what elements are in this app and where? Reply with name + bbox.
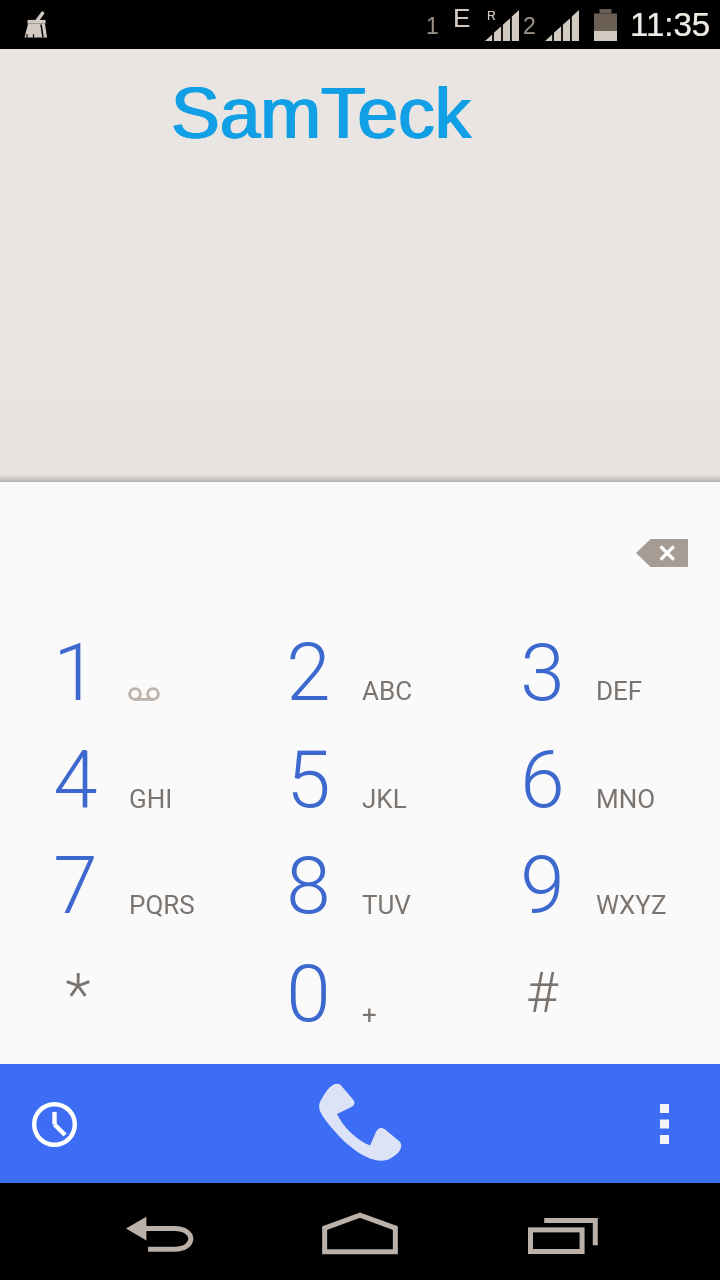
- staticText: 8: [286, 839, 331, 933]
- staticText: PQRS: [129, 890, 195, 920]
- staticText: 9: [520, 839, 565, 933]
- staticText: *: [65, 960, 91, 1029]
- staticText: 11:35: [630, 6, 711, 43]
- staticText: 0: [286, 947, 331, 1041]
- staticText: 3: [520, 626, 565, 720]
- button[interactable]: *: [0, 911, 240, 1018]
- button[interactable]: 5: [240, 697, 480, 804]
- button[interactable]: 7: [0, 804, 240, 911]
- staticText: +: [362, 1000, 377, 1030]
- button[interactable]: Backspace: [616, 524, 708, 582]
- button[interactable]: Call history: [14, 1084, 94, 1164]
- button[interactable]: 3: [480, 590, 720, 697]
- button[interactable]: Call: [275, 1064, 445, 1183]
- staticText: WXYZ: [596, 890, 667, 920]
- button[interactable]: Home: [300, 1183, 420, 1280]
- staticText: DEF: [596, 676, 643, 706]
- button[interactable]: 2: [240, 590, 480, 697]
- staticText: SamTeck: [172, 72, 473, 154]
- staticText: 2: [286, 626, 331, 720]
- button[interactable]: 8: [240, 804, 480, 911]
- button[interactable]: More options: [624, 1084, 704, 1164]
- button[interactable]: 1: [0, 590, 240, 697]
- staticText: MNO: [596, 784, 656, 814]
- staticText: #: [526, 961, 558, 1025]
- button[interactable]: 9: [480, 804, 720, 911]
- staticText: GHI: [129, 784, 173, 814]
- staticText: 2: [523, 13, 536, 39]
- staticText: TUV: [362, 890, 411, 920]
- button[interactable]: 6: [480, 697, 720, 804]
- button[interactable]: Back: [100, 1183, 220, 1280]
- button[interactable]: #: [480, 911, 720, 1018]
- staticText: 1: [53, 626, 98, 720]
- button[interactable]: 0: [240, 911, 480, 1018]
- staticText: 6: [520, 733, 565, 827]
- staticText: 5: [286, 733, 331, 827]
- staticText: SamTeck: [170, 72, 471, 154]
- staticText: R: [487, 9, 496, 22]
- button[interactable]: 4: [0, 697, 240, 804]
- staticText: E: [453, 3, 471, 32]
- staticText: 1: [426, 13, 439, 39]
- staticText: SamTeck: [171, 72, 472, 154]
- button[interactable]: Recents: [502, 1183, 622, 1280]
- staticText: 7: [53, 839, 98, 933]
- staticText: JKL: [362, 784, 407, 814]
- staticText: ABC: [362, 676, 413, 706]
- staticText: 4: [53, 733, 98, 827]
